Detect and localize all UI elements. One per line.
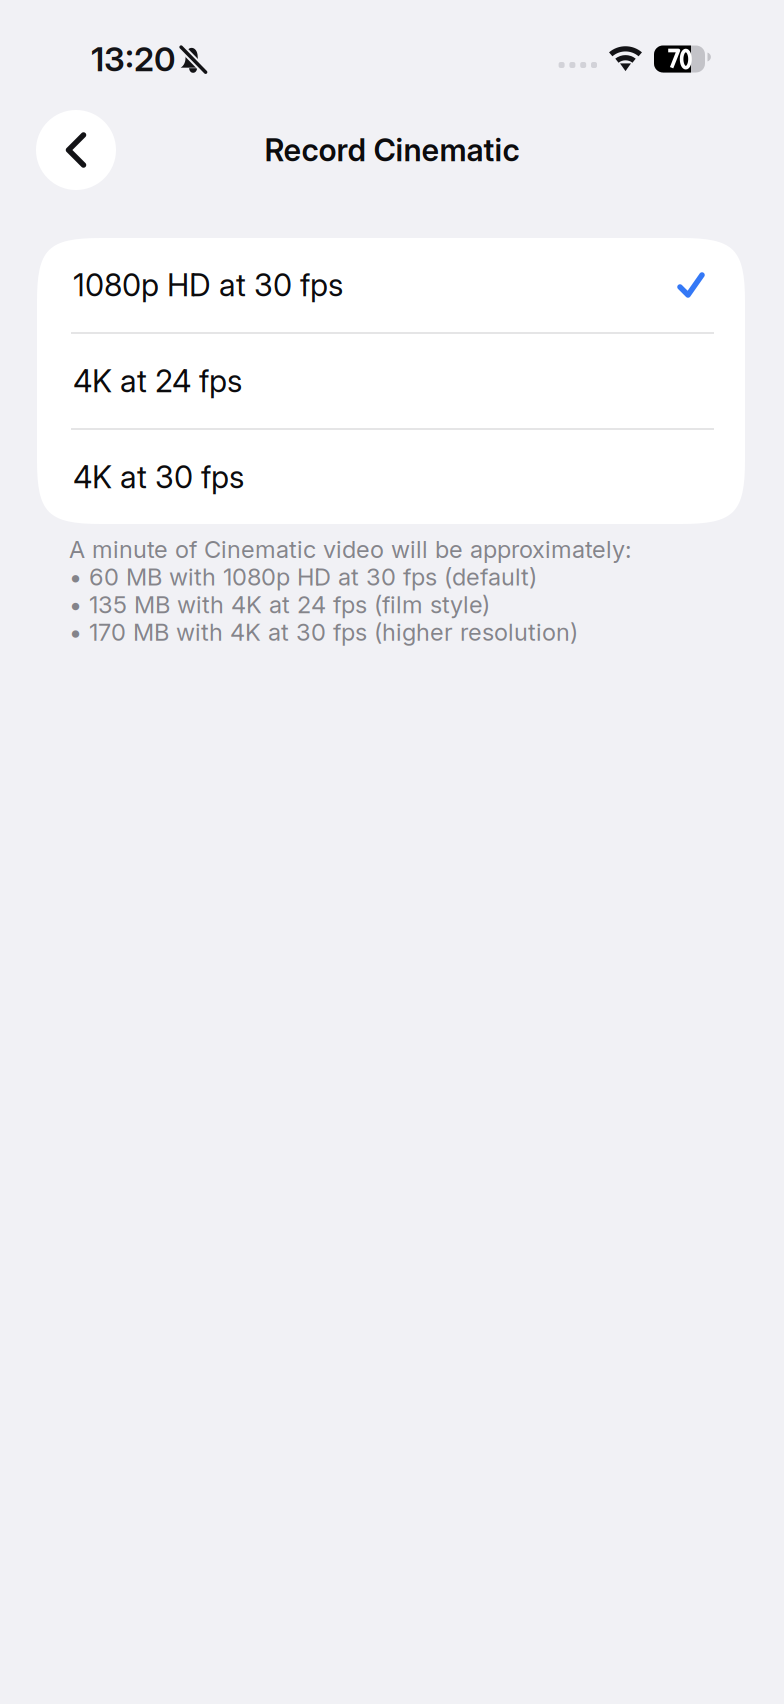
staticText: 13:20 [91, 39, 176, 79]
button[interactable]: 4K at 30 fps [37, 430, 745, 524]
button[interactable]: Back [36, 110, 116, 190]
staticText: • 60 MB with 1080p HD at 30 fps (default… [69, 563, 537, 591]
staticText: Record Cinematic [264, 131, 519, 168]
button[interactable]: 4K at 24 fps [37, 334, 745, 428]
staticText: 1080p HD at 30 fps [73, 266, 343, 303]
staticText: 4K at 24 fps [73, 362, 242, 399]
button[interactable]: 1080p HD at 30 fps [37, 238, 745, 332]
staticText: 4K at 30 fps [73, 458, 244, 495]
staticText: A minute of Cinematic video will be appr… [69, 535, 631, 564]
staticText: • 135 MB with 4K at 24 fps (film style) [69, 590, 490, 619]
staticText: • 170 MB with 4K at 30 fps (higher resol… [69, 618, 578, 646]
